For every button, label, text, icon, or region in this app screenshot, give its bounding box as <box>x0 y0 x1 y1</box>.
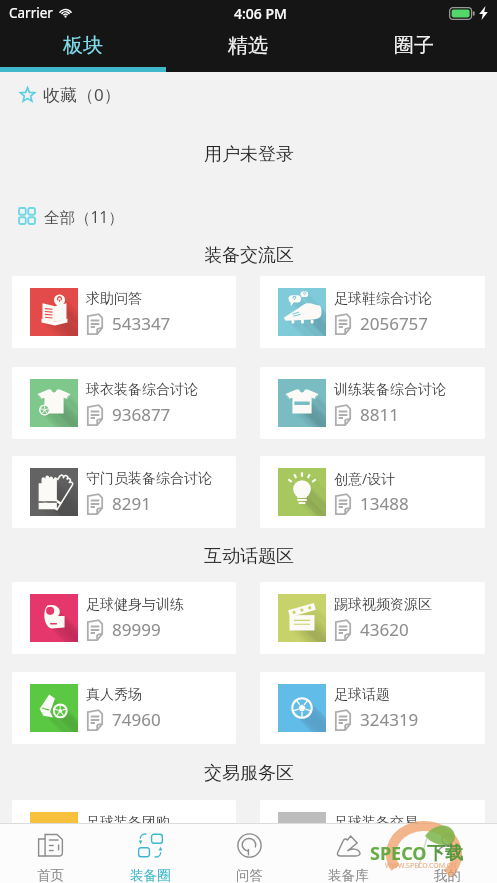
staticText: 用户未登录 <box>204 143 294 166</box>
staticText: 全部（11） <box>44 206 124 227</box>
staticText: 精选 <box>228 33 268 58</box>
staticText: 4:06 PM <box>234 4 287 23</box>
staticText: 我的 <box>434 867 461 883</box>
staticText: 互动话题区 <box>204 545 294 567</box>
button[interactable]: 装备圈 <box>100 824 200 883</box>
staticText: 板块 <box>63 33 103 58</box>
staticText: 球衣装备综合讨论 <box>86 381 198 399</box>
staticText: 8291 <box>112 492 151 515</box>
button[interactable]: 训练装备综合讨论 <box>260 367 485 439</box>
staticText: 936877 <box>112 403 171 426</box>
staticText: 足球健身与训练 <box>86 596 184 614</box>
staticText: 下载 <box>427 842 463 865</box>
staticText: 真人秀场 <box>86 686 142 704</box>
button[interactable]: 精选 <box>165 26 331 65</box>
staticText: SPECO <box>370 841 427 866</box>
staticText: 足球装备团购 <box>86 814 170 832</box>
staticText: 足球话题 <box>334 686 390 704</box>
staticText: 43620 <box>360 618 409 641</box>
staticText: 324319 <box>360 708 419 731</box>
staticText: 创意/设计 <box>334 469 396 488</box>
staticText: 求助问答 <box>86 290 142 308</box>
button[interactable]: 求助问答 <box>12 276 236 348</box>
staticText: Carrier <box>9 4 53 22</box>
button[interactable]: 真人秀场 <box>12 672 236 744</box>
button[interactable]: 足球话题 <box>260 672 485 744</box>
button[interactable]: 足球装备交易 <box>260 800 485 872</box>
staticText: 74960 <box>112 708 161 731</box>
staticText: 首页 <box>37 867 64 883</box>
button[interactable]: 球衣装备综合讨论 <box>12 367 236 439</box>
button[interactable]: 圈子 <box>331 26 497 65</box>
staticText: 装备圈 <box>130 867 171 883</box>
staticText: 2056757 <box>360 312 429 335</box>
staticText: 守门员装备综合讨论 <box>86 470 212 488</box>
staticText: 13488 <box>360 492 409 515</box>
button[interactable]: 守门员装备综合讨论 <box>12 456 236 528</box>
button[interactable]: 首页 <box>0 824 100 883</box>
staticText: 交易服务区 <box>204 762 294 784</box>
staticText: 8811 <box>360 403 399 426</box>
button[interactable]: 足球装备团购 <box>12 800 236 872</box>
staticText: 训练装备综合讨论 <box>334 381 446 399</box>
staticText: 543347 <box>112 312 171 335</box>
staticText: 问答 <box>236 867 263 883</box>
button[interactable]: 踢球视频资源区 <box>260 582 485 654</box>
staticText: 89999 <box>112 618 161 641</box>
button[interactable]: 创意/设计 <box>260 456 485 528</box>
button[interactable]: 问答 <box>200 824 299 883</box>
button[interactable]: 我的 <box>398 824 497 883</box>
staticText: 圈子 <box>394 33 434 58</box>
staticText: 收藏（0） <box>43 83 121 106</box>
staticText: 足球鞋综合讨论 <box>334 290 432 308</box>
button[interactable]: 装备库 <box>299 824 398 883</box>
button[interactable]: 足球鞋综合讨论 <box>260 276 485 348</box>
staticText: 踢球视频资源区 <box>334 596 432 614</box>
staticText: WWW.SPECO.COM.CN <box>385 861 457 871</box>
staticText: 足球装备交易 <box>334 814 418 832</box>
button[interactable]: 板块 <box>0 26 165 65</box>
staticText: 装备交流区 <box>204 244 294 266</box>
button[interactable]: 足球健身与训练 <box>12 582 236 654</box>
staticText: 装备库 <box>328 867 369 883</box>
